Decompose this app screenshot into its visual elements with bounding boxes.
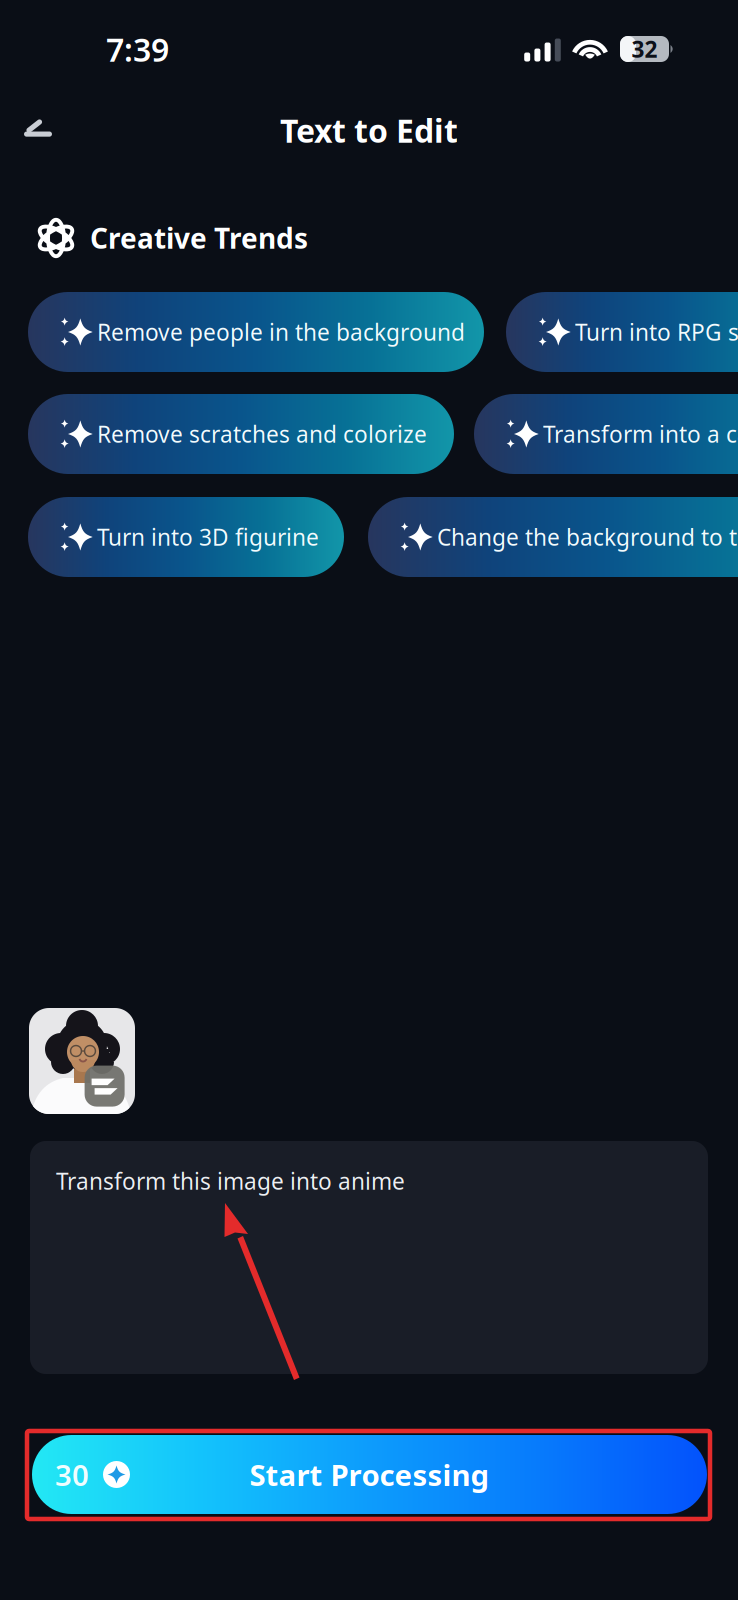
staticText: Text to Edit xyxy=(280,109,458,151)
button[interactable]: Transform into a cartoon xyxy=(474,394,738,474)
staticText: 30 xyxy=(55,1455,89,1494)
staticText: Turn into RPG style xyxy=(575,317,738,347)
staticText: Transform into a cartoon xyxy=(543,419,738,449)
staticText: Turn into 3D figurine xyxy=(97,522,319,552)
staticText: Transform this image into anime xyxy=(56,1166,405,1196)
button[interactable]: Change image xyxy=(29,1008,135,1114)
staticText: Remove scratches and colorize xyxy=(97,419,427,449)
button[interactable]: Turn into RPG style xyxy=(506,292,738,372)
staticText: Start Processing xyxy=(249,1455,489,1494)
button[interactable]: Remove scratches and colorize xyxy=(28,394,454,474)
button[interactable]: Remove people in the background xyxy=(28,292,484,372)
button[interactable]: Change the background to the beach xyxy=(368,497,738,577)
staticText: Remove people in the background xyxy=(97,317,465,347)
button[interactable]: Transform this image into anime xyxy=(30,1141,708,1374)
button[interactable]: Turn into 3D figurine xyxy=(28,497,344,577)
button[interactable]: Back xyxy=(9,99,71,155)
staticText: 7:39 xyxy=(106,28,169,70)
staticText: Change the background to the beach xyxy=(437,522,738,552)
staticText: Creative Trends xyxy=(90,219,308,257)
staticText: 32 xyxy=(631,34,657,64)
